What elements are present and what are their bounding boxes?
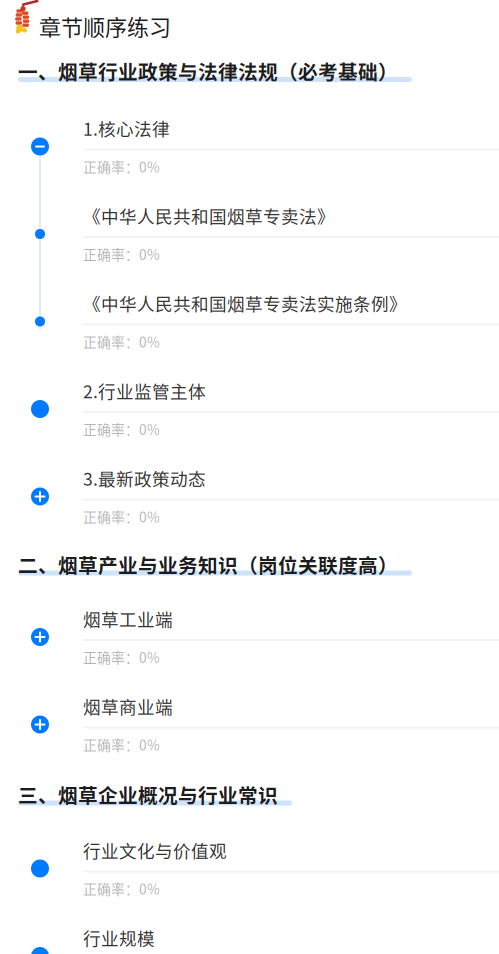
staticText: 正确率：0% <box>83 156 160 176</box>
staticText: 章节顺序练习 <box>39 10 171 42</box>
staticText: 正确率：0% <box>83 244 160 264</box>
staticText: 三、烟草企业概况与行业常识 <box>18 780 278 809</box>
button[interactable]: 《中华人民共和国烟草专卖法实施条例》 <box>0 286 499 373</box>
button[interactable]: 烟草工业端 <box>0 601 499 689</box>
staticText: 1.核心法律 <box>83 115 170 141</box>
staticText: 正确率：0% <box>83 647 160 667</box>
staticText: 《中华人民共和国烟草专卖法实施条例》 <box>83 290 407 316</box>
button[interactable]: 行业规模 <box>0 920 499 954</box>
staticText: 二、烟草产业与业务知识（岗位关联度高） <box>18 550 398 579</box>
button[interactable]: 3.最新政策动态 <box>0 461 499 548</box>
staticText: 正确率：0% <box>83 419 160 439</box>
staticText: 烟草工业端 <box>83 606 173 631</box>
staticText: 行业规模 <box>83 925 155 950</box>
staticText: 一、烟草行业政策与法律法规（必考基础） <box>18 57 398 85</box>
button[interactable]: 2.行业监管主体 <box>0 373 499 461</box>
staticText: 《中华人民共和国烟草专卖法》 <box>83 203 335 228</box>
staticText: 3.最新政策动态 <box>83 465 206 491</box>
button[interactable]: 1.核心法律 <box>0 111 499 198</box>
staticText: 正确率：0% <box>83 331 160 351</box>
staticText: 烟草商业端 <box>83 693 173 719</box>
staticText: 正确率：0% <box>83 506 160 526</box>
staticText: 正确率：0% <box>83 878 160 898</box>
staticText: 2.行业监管主体 <box>83 378 206 403</box>
button[interactable]: 烟草商业端 <box>0 689 499 776</box>
staticText: 正确率：0% <box>83 734 160 754</box>
staticText: 行业文化与价值观 <box>83 837 227 863</box>
button[interactable]: 行业文化与价值观 <box>0 833 499 920</box>
button[interactable]: 《中华人民共和国烟草专卖法》 <box>0 198 499 286</box>
